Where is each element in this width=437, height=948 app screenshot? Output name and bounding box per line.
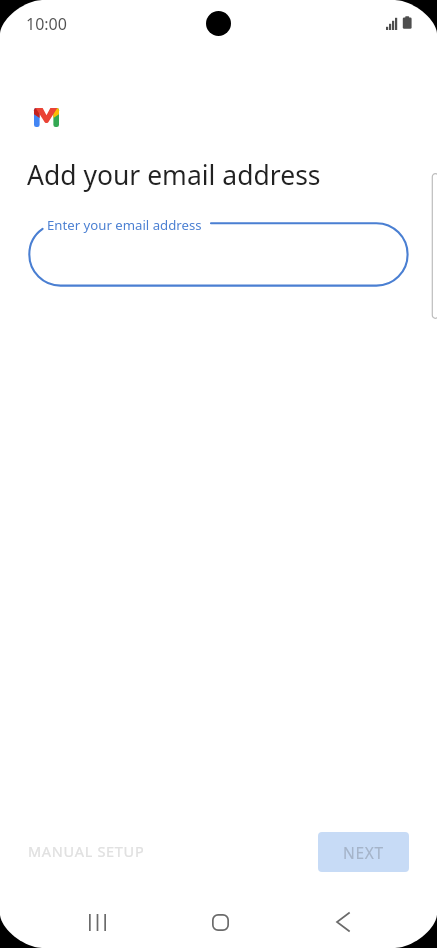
button[interactable]: Back xyxy=(313,892,373,948)
button[interactable]: Home xyxy=(190,892,250,948)
staticText: Enter your email address xyxy=(47,216,202,234)
staticText: Add your email address xyxy=(27,157,321,193)
button[interactable]: Enter your email address xyxy=(27,222,410,288)
staticText: 10:00 xyxy=(26,13,67,35)
staticText: MANUAL SETUP xyxy=(28,841,145,861)
button[interactable]: Recent apps xyxy=(67,892,127,948)
staticText: NEXT xyxy=(343,842,384,863)
button[interactable]: MANUAL SETUP xyxy=(16,835,157,867)
button[interactable]: NEXT xyxy=(318,832,409,872)
